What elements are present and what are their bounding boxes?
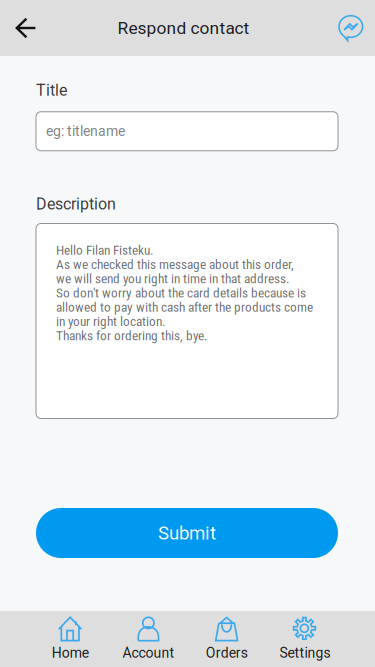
staticText: Submit <box>158 522 216 544</box>
staticText: Hello Filan Fisteku. <box>56 242 154 258</box>
staticText: So don't worry about the card details be… <box>56 285 306 301</box>
staticText: Description <box>36 195 116 214</box>
button[interactable]: Orders <box>187 611 266 667</box>
staticText: Account <box>122 645 174 661</box>
staticText: Settings <box>279 645 330 661</box>
button[interactable]: Messenger <box>327 0 375 56</box>
button[interactable]: Submit <box>36 508 338 558</box>
staticText: we will send you right in time in that a… <box>56 271 290 286</box>
staticText: allowed to pay with cash after the produ… <box>56 299 313 315</box>
staticText: Home <box>52 645 89 661</box>
staticText: eg: titlename <box>46 123 125 139</box>
staticText: Respond contact <box>117 18 249 38</box>
staticText: Orders <box>206 645 248 661</box>
button[interactable]: Back <box>0 0 52 56</box>
button[interactable]: Account <box>109 611 187 667</box>
button[interactable]: Settings <box>266 611 344 667</box>
staticText: As we checked this message about this or… <box>56 257 294 272</box>
button[interactable]: Home <box>31 611 109 667</box>
staticText: Thanks for ordering this, bye. <box>56 328 208 343</box>
staticText: in your right location. <box>56 314 166 329</box>
staticText: Title <box>36 81 67 100</box>
